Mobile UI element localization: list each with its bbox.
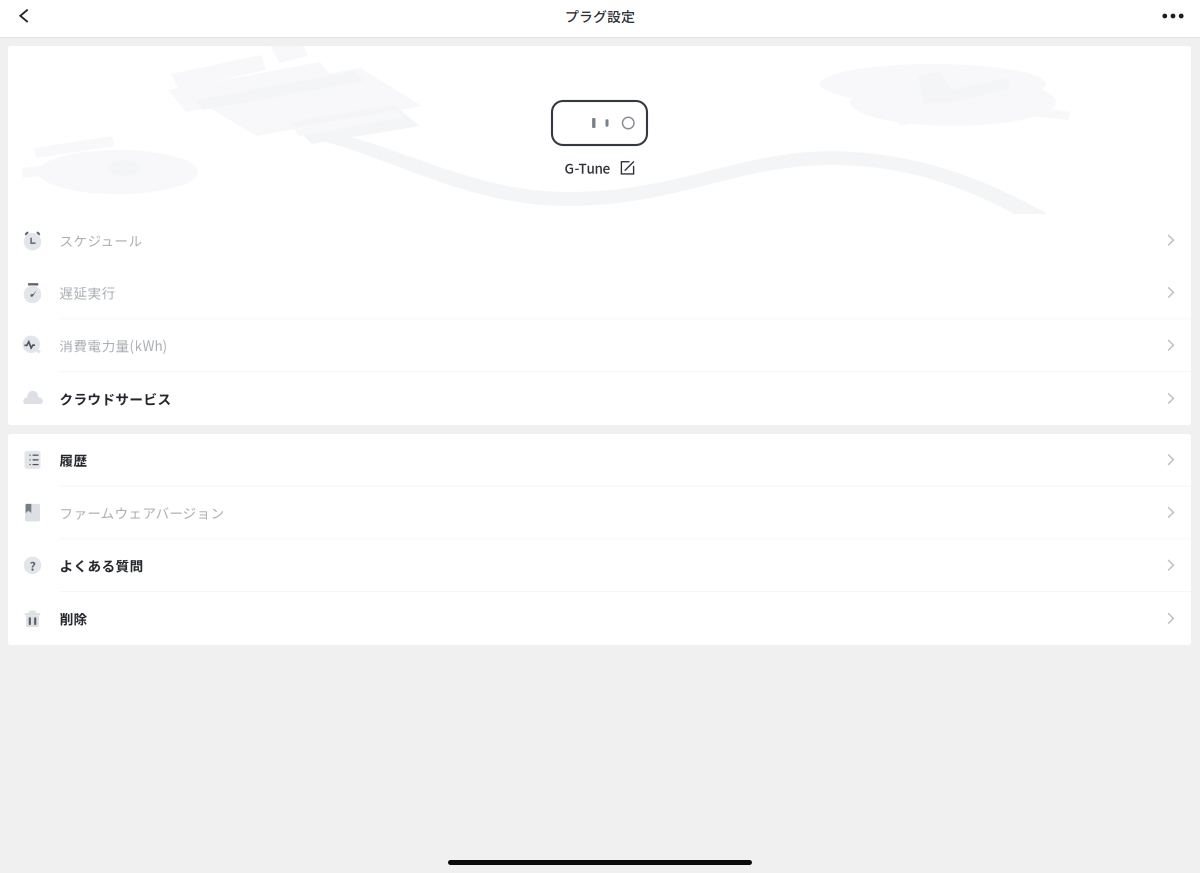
- button[interactable]: 消費電力量(kWh): [8, 319, 1191, 372]
- button[interactable]: 履歴: [8, 434, 1191, 487]
- staticText: スケジュール: [59, 230, 142, 250]
- staticText: G-Tune: [564, 158, 610, 178]
- button[interactable]: スケジュール: [8, 214, 1191, 267]
- staticText: 削除: [59, 609, 87, 628]
- staticText: 遅延実行: [59, 283, 115, 302]
- staticText: クラウドサービス: [59, 389, 171, 408]
- staticText: 履歴: [59, 450, 87, 470]
- staticText: ファームウェアバージョン: [59, 503, 224, 522]
- button[interactable]: 削除: [8, 592, 1191, 645]
- staticText: よくある質問: [59, 555, 143, 575]
- button[interactable]: ファームウェアバージョン: [8, 487, 1191, 540]
- button[interactable]: クラウドサービス: [8, 372, 1191, 425]
- button[interactable]: More options: [1151, 0, 1195, 32]
- button[interactable]: Rename device: [620, 161, 634, 175]
- button[interactable]: ?: [8, 539, 1191, 592]
- button[interactable]: 遅延実行: [8, 267, 1191, 320]
- staticText: 消費電力量(kWh): [59, 335, 167, 355]
- staticText: プラグ設定: [565, 6, 635, 26]
- button[interactable]: Back: [2, 0, 46, 32]
- staticText: ?: [29, 556, 35, 574]
